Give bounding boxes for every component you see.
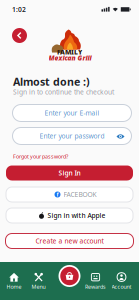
button[interactable]: Rewards [82, 272, 109, 290]
button[interactable]: Cart [58, 265, 80, 287]
staticText: Enter your password [39, 132, 104, 140]
button[interactable]: Enter your E-mail [12, 104, 131, 121]
staticText: Forgot your password? [13, 153, 68, 160]
staticText: Mexican Grill [48, 53, 91, 62]
staticText: FACEBOOK [63, 190, 96, 199]
staticText: Almost done :) [13, 74, 90, 89]
button[interactable]: Home [0, 272, 27, 290]
staticText: Sign in with Apple [47, 211, 105, 220]
button[interactable]: Account [108, 272, 135, 290]
staticText: Enter your E-mail [44, 109, 99, 117]
button[interactable]: Show password [115, 131, 125, 141]
staticText: Sign in to continue the checkout [13, 87, 114, 96]
staticText: Menu [31, 283, 45, 290]
button[interactable]: Menu [25, 272, 52, 290]
button[interactable]: Back [12, 28, 27, 43]
button[interactable]: Sign in with Apple [6, 208, 133, 223]
staticText: Account [111, 283, 131, 290]
button[interactable]: Sign In [6, 165, 133, 180]
staticText: 1:02 [12, 5, 26, 14]
button[interactable]: Forgot your password? [13, 153, 68, 160]
staticText: Home [6, 283, 21, 290]
staticText: Sign In [58, 169, 80, 177]
staticText: Rewards [85, 283, 106, 290]
button[interactable]: Create a new account [5, 233, 133, 248]
staticText: Create a new account [35, 237, 103, 245]
button[interactable]: Enter your password [12, 127, 131, 144]
staticText: FAMILY [57, 48, 82, 56]
button[interactable]: f [6, 187, 133, 202]
staticText: f [56, 191, 58, 198]
